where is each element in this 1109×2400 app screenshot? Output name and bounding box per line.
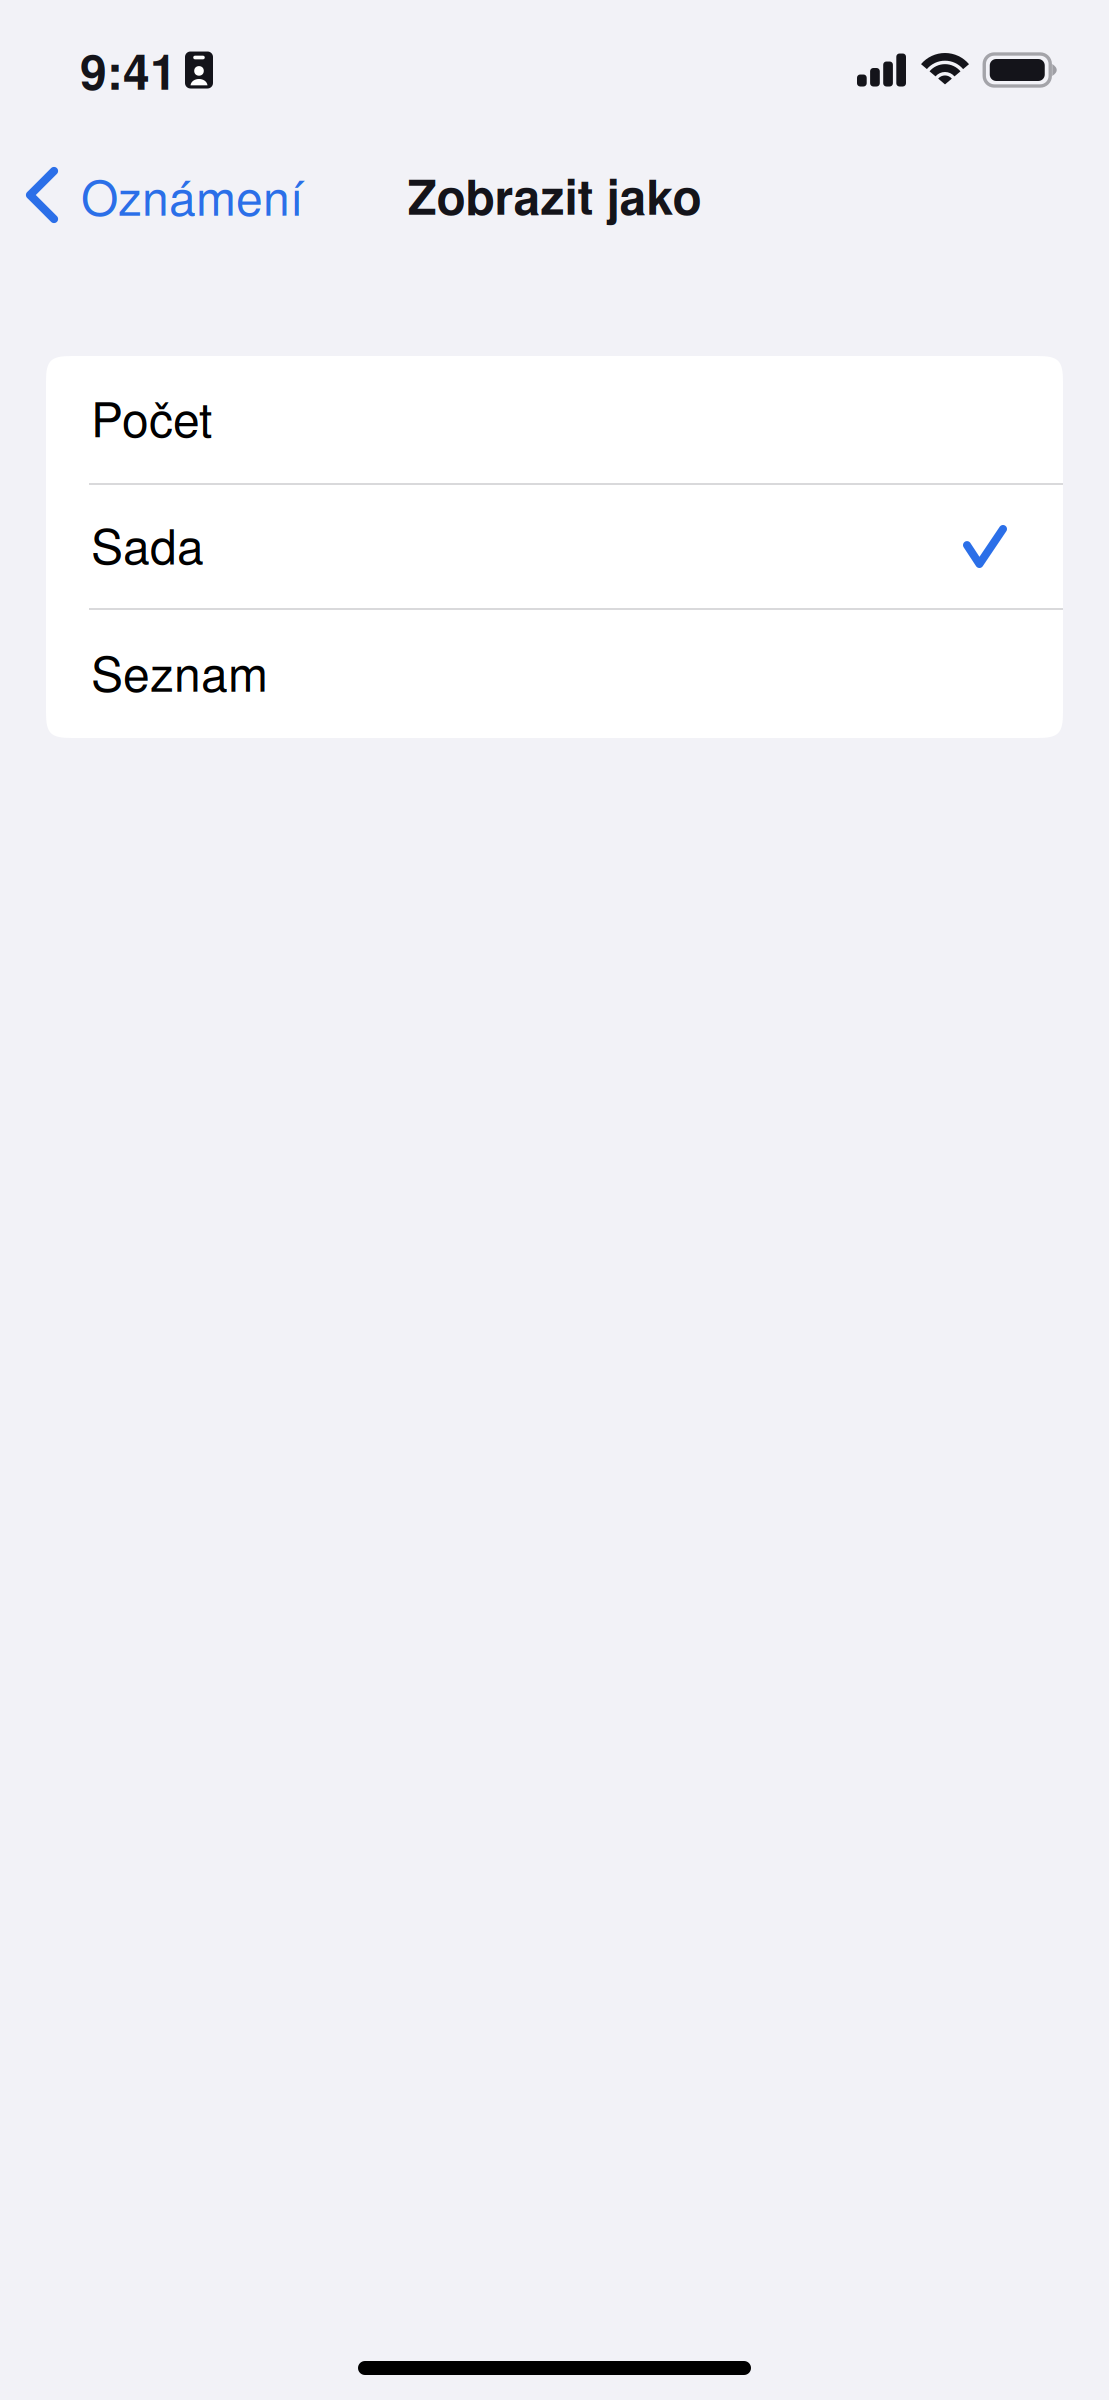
- button[interactable]: Seznam: [46, 610, 1063, 738]
- staticText: Sada: [91, 509, 204, 578]
- staticText: Oznámení: [81, 161, 303, 229]
- staticText: Zobrazit jako: [407, 161, 701, 229]
- staticText: 9:41: [80, 36, 177, 104]
- button[interactable]: Oznámení: [0, 133, 323, 257]
- staticText: Seznam: [91, 637, 268, 705]
- button[interactable]: Sada: [46, 485, 1063, 608]
- button[interactable]: Počet: [46, 356, 1063, 483]
- staticText: Počet: [91, 382, 212, 451]
